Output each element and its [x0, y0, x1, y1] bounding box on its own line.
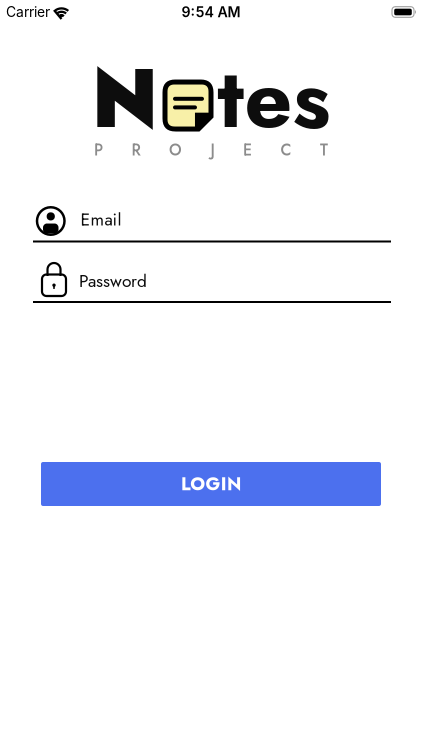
staticText: C: [280, 139, 291, 161]
staticText: Password: [79, 268, 147, 293]
staticText: P: [94, 139, 103, 161]
staticText: tes: [217, 38, 330, 158]
button[interactable]: Password: [33, 263, 391, 303]
staticText: E: [243, 139, 252, 161]
staticText: T: [320, 139, 328, 161]
staticText: Carrier: [6, 4, 50, 20]
staticText: LOGIN: [181, 471, 241, 497]
staticText: N: [91, 38, 158, 158]
staticText: Email: [80, 207, 121, 232]
button[interactable]: Email: [33, 206, 391, 242]
staticText: R: [131, 139, 140, 161]
button[interactable]: LOGIN: [41, 462, 381, 506]
staticText: O: [169, 139, 182, 161]
staticText: J: [210, 139, 214, 161]
staticText: 9:54 AM: [181, 3, 240, 20]
